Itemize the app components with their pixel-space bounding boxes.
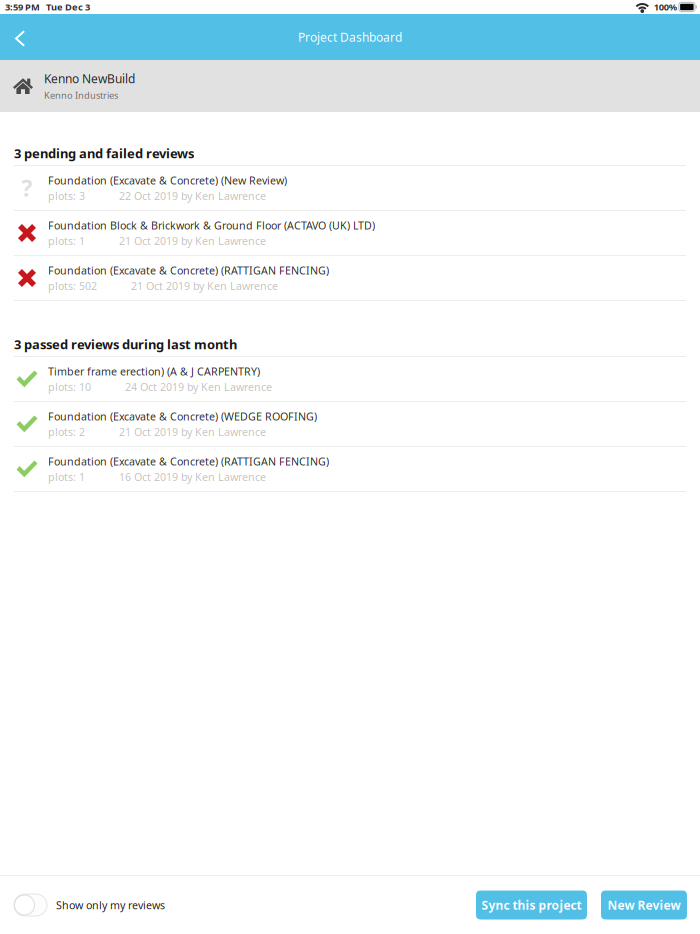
staticText: 16 Oct 2019 by Ken Lawrence [119, 469, 266, 484]
staticText: 21 Oct 2019 by Ken Lawrence [119, 233, 266, 248]
staticText: ? [21, 173, 32, 203]
button[interactable]: Show only my reviews [0, 876, 165, 934]
staticText: Foundation (Excavate & Concrete) (New Re… [48, 173, 287, 187]
button[interactable]: ? [0, 166, 700, 211]
staticText: 100% [654, 1, 677, 13]
staticText: plots: 3 [48, 188, 85, 203]
button[interactable]: Kenno NewBuild [0, 60, 700, 112]
staticText: 24 Oct 2019 by Ken Lawrence [125, 379, 272, 394]
staticText: plots: 1 [48, 233, 85, 248]
staticText: Foundation (Excavate & Concrete) (WEDGE … [48, 409, 317, 423]
button[interactable]: Foundation (Excavate & Concrete) (WEDGE … [0, 402, 700, 447]
staticText: Kenno NewBuild [44, 70, 135, 87]
staticText: Kenno Industries [44, 89, 118, 101]
staticText: plots: 10 [48, 379, 91, 394]
staticText: 3 passed reviews during last month [14, 335, 237, 353]
button[interactable]: Back [0, 14, 46, 60]
staticText: plots: 502 [48, 278, 97, 293]
staticText: Sync this project [481, 897, 581, 913]
staticText: plots: 1 [48, 469, 85, 484]
button[interactable]: Foundation (Excavate & Concrete) (RATTIG… [0, 256, 700, 301]
button[interactable]: Foundation Block & Brickwork & Ground Fl… [0, 211, 700, 256]
staticText: 3 pending and failed reviews [14, 144, 194, 162]
staticText: Project Dashboard [298, 29, 402, 45]
button[interactable]: Foundation (Excavate & Concrete) (RATTIG… [0, 447, 700, 492]
staticText: plots: 2 [48, 424, 85, 439]
button[interactable]: New Review [601, 890, 687, 919]
staticText: 21 Oct 2019 by Ken Lawrence [119, 424, 266, 439]
staticText: 3:59 PM [5, 1, 40, 13]
staticText: Foundation (Excavate & Concrete) (RATTIG… [48, 263, 329, 277]
staticText: Tue Dec 3 [46, 1, 90, 13]
button[interactable]: Sync this project [476, 890, 587, 919]
staticText: 22 Oct 2019 by Ken Lawrence [119, 188, 266, 203]
staticText: Foundation Block & Brickwork & Ground Fl… [48, 218, 375, 232]
staticText: Foundation (Excavate & Concrete) (RATTIG… [48, 454, 329, 468]
staticText: 21 Oct 2019 by Ken Lawrence [131, 278, 278, 293]
staticText: Show only my reviews [56, 898, 165, 912]
staticText: New Review [607, 897, 680, 913]
button[interactable]: Timber frame erection) (A & J CARPENTRY) [0, 357, 700, 402]
staticText: Timber frame erection) (A & J CARPENTRY) [48, 364, 260, 378]
